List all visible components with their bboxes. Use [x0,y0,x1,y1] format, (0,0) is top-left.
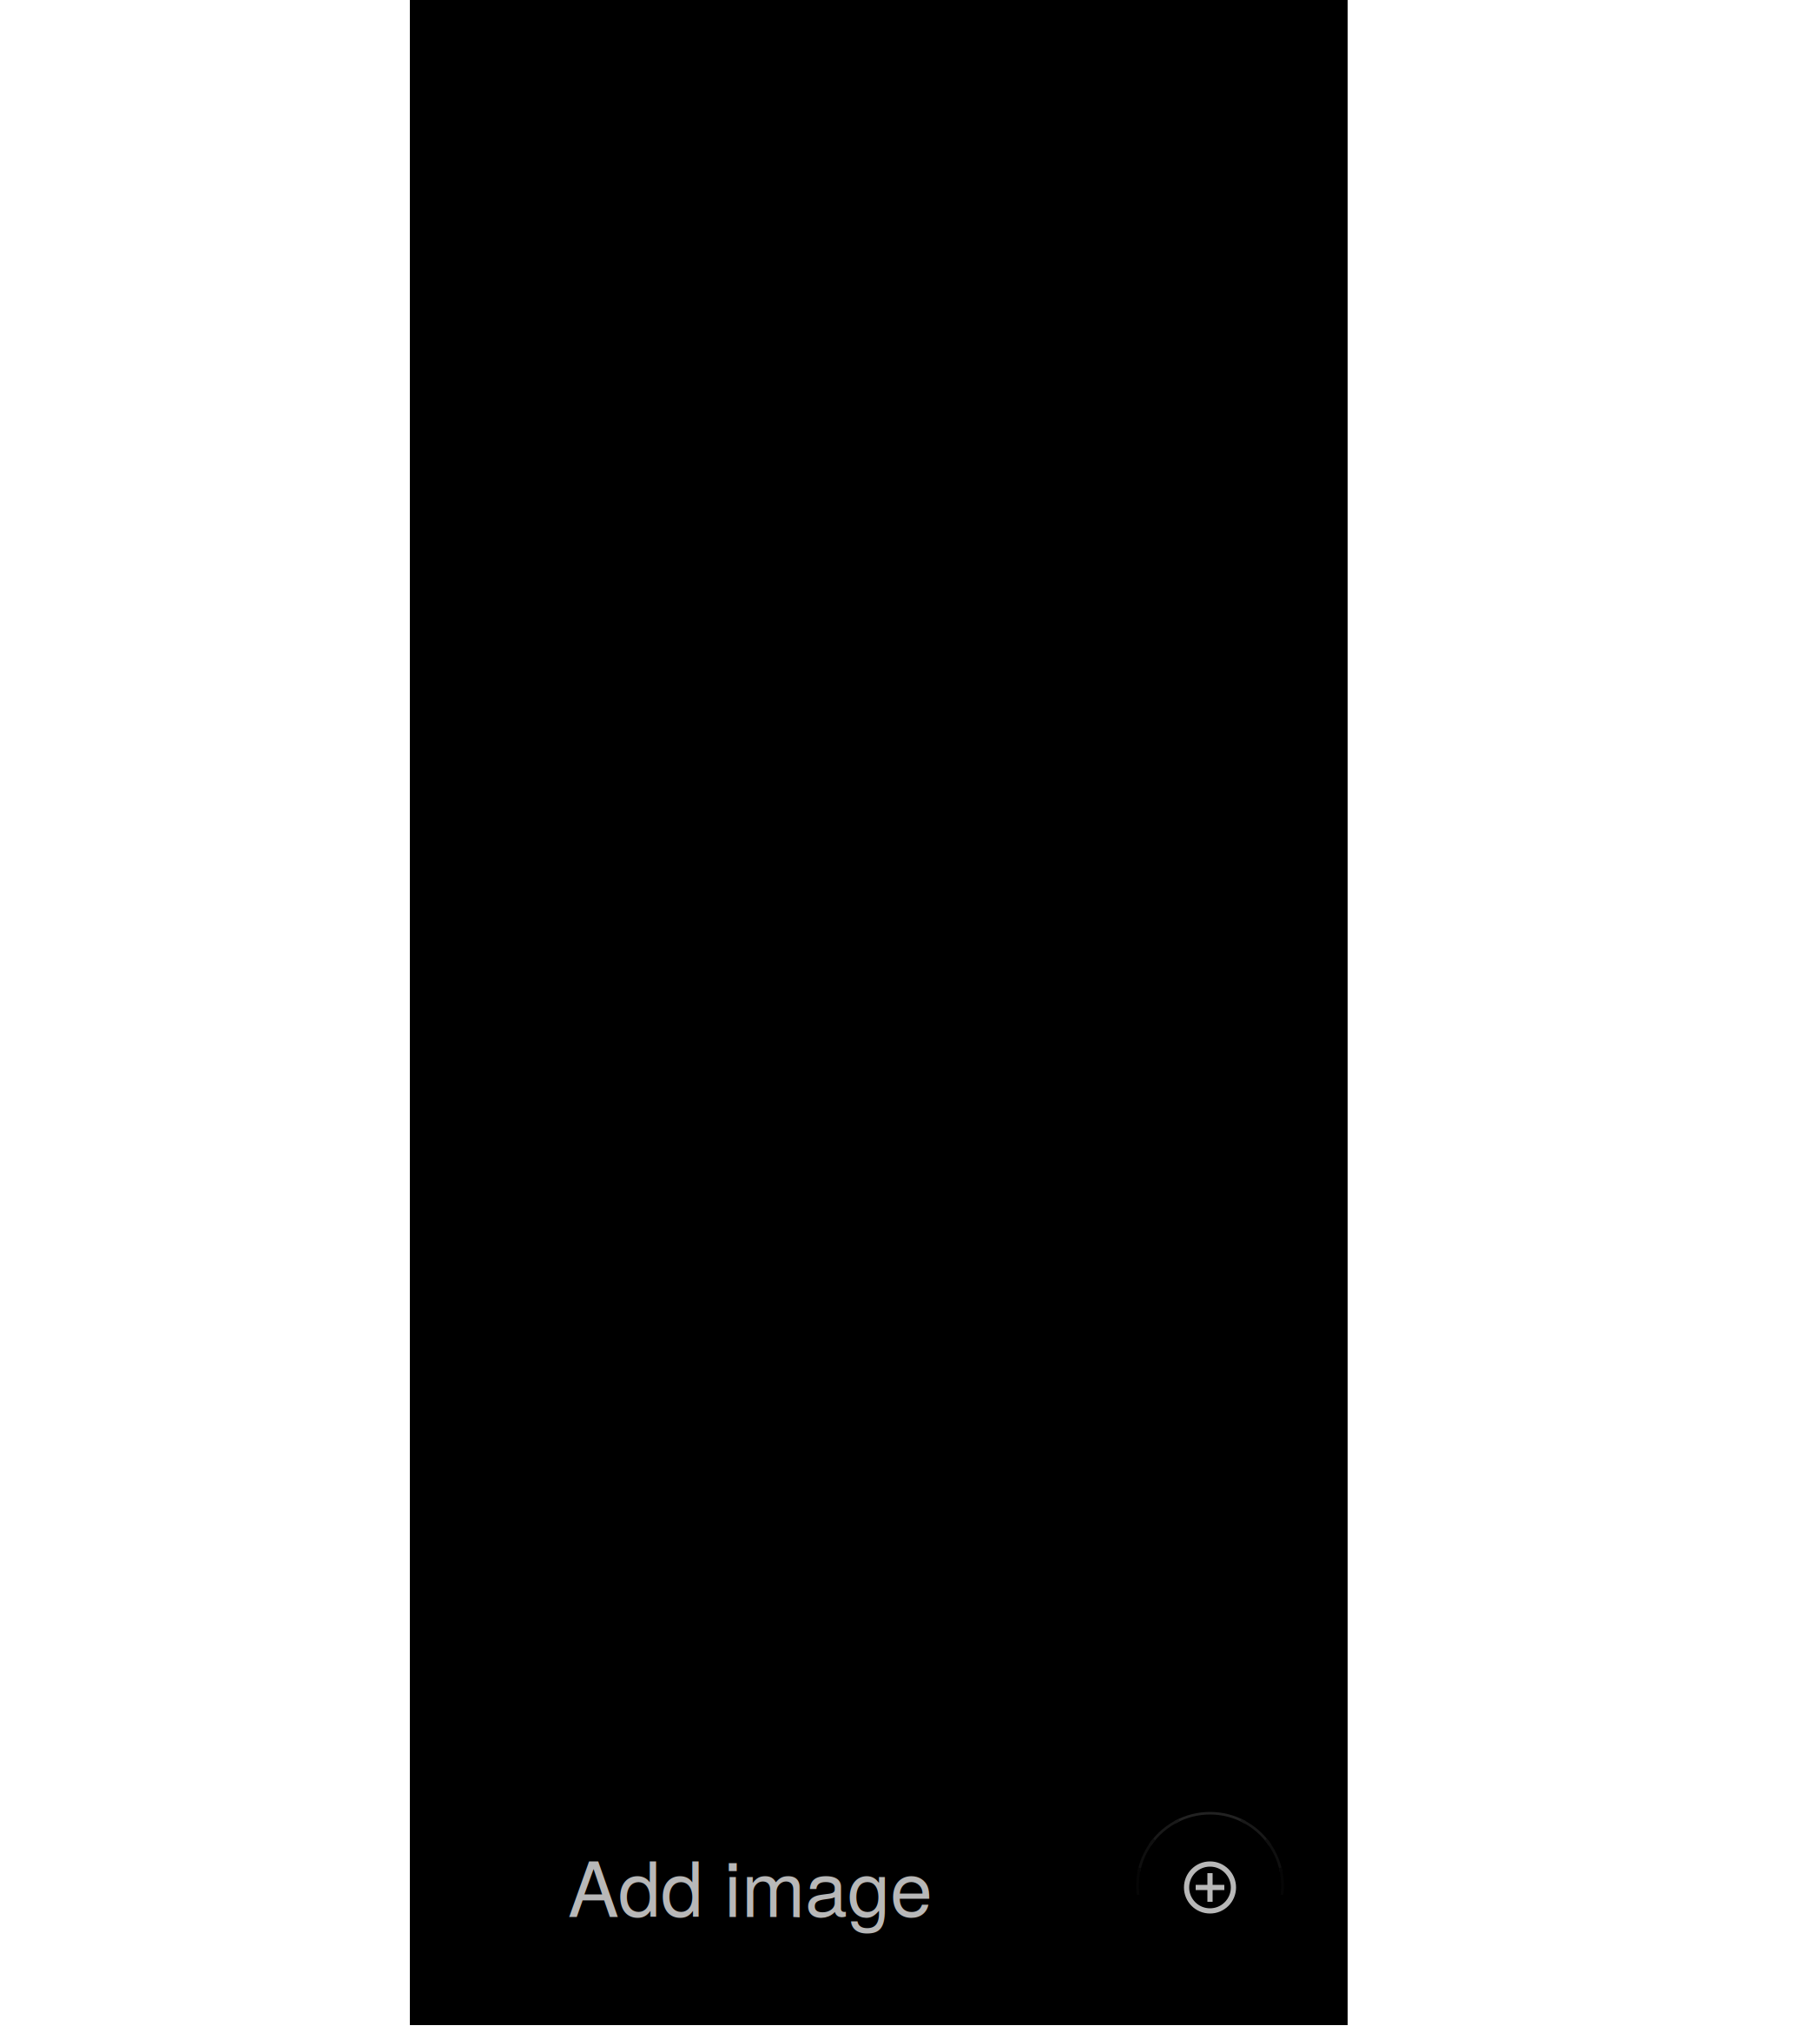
staticText: Add image [568,1829,933,1939]
button[interactable]: Add image [1137,1814,1283,1961]
